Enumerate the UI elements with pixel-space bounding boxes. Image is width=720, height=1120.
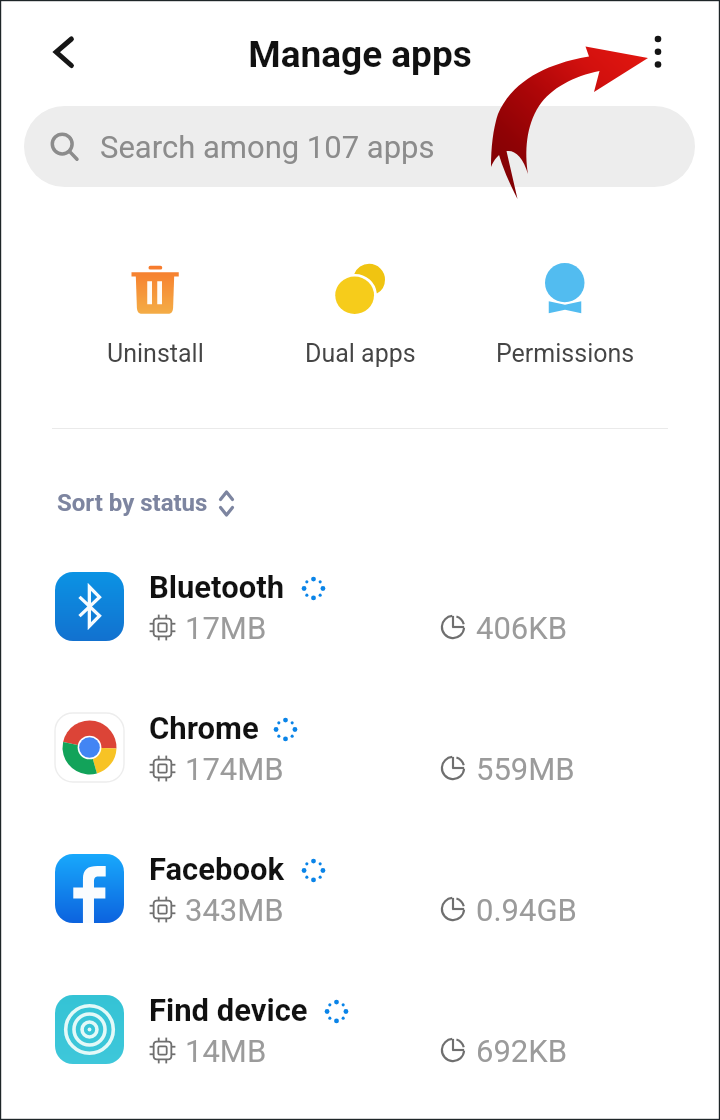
staticText: Uninstall — [107, 339, 204, 368]
staticText: Search among 107 apps — [100, 129, 435, 165]
button[interactable]: More options — [634, 26, 682, 78]
staticText: 692KB — [476, 1033, 568, 1069]
staticText: Chrome — [149, 710, 259, 746]
staticText: 17MB — [185, 610, 267, 646]
button[interactable]: Dual apps — [275, 248, 445, 378]
staticText: Manage apps — [0, 33, 720, 76]
staticText: Dual apps — [305, 339, 416, 368]
staticText: Find device — [149, 992, 308, 1028]
button[interactable]: Permissions — [480, 248, 650, 378]
button[interactable]: Facebook — [0, 818, 720, 959]
button[interactable]: Chrome — [0, 677, 720, 818]
button[interactable]: Bluetooth — [0, 536, 720, 677]
staticText: Sort by status — [57, 489, 208, 517]
button[interactable]: Find device — [0, 959, 720, 1100]
staticText: Bluetooth — [149, 569, 285, 605]
staticText: 14MB — [185, 1033, 267, 1069]
button[interactable]: Sort by status — [47, 482, 240, 524]
staticText: Permissions — [496, 339, 635, 368]
staticText: 0.94GB — [476, 892, 577, 928]
staticText: 343MB — [185, 892, 284, 928]
button[interactable]: Search among 107 apps — [24, 106, 695, 187]
staticText: 174MB — [185, 751, 284, 787]
staticText: 406KB — [476, 610, 568, 646]
staticText: 559MB — [476, 751, 575, 787]
button[interactable]: Uninstall — [70, 248, 240, 378]
button[interactable]: Back — [35, 26, 95, 78]
staticText: Facebook — [149, 851, 284, 887]
